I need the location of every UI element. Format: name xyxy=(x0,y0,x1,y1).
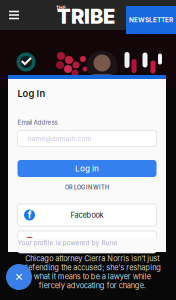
staticText: ✓ xyxy=(19,52,32,70)
staticText: Chicago attorney Cierra Norris isn't jus… xyxy=(23,254,161,290)
staticText: Email Address xyxy=(17,119,57,126)
button[interactable]: NEWSLETTER xyxy=(63,136,113,164)
staticText: f xyxy=(27,208,31,221)
button[interactable]: Menu xyxy=(82,144,94,156)
button[interactable]: f xyxy=(18,139,157,161)
staticText: Log In xyxy=(17,88,45,99)
staticText: TRIBE xyxy=(57,4,115,29)
staticText: Your profile is powered by Rune xyxy=(17,239,117,247)
button[interactable]: Sign in with Google xyxy=(18,139,157,161)
staticText: NEWSLETTER xyxy=(129,16,173,24)
staticText: Google xyxy=(74,237,99,246)
staticText: name@domain.com xyxy=(27,134,91,142)
staticText: OR LOG IN WITH xyxy=(65,184,109,191)
staticText: THE xyxy=(56,5,66,11)
button[interactable]: Log in xyxy=(18,141,157,158)
staticText: Log in xyxy=(75,164,99,173)
button[interactable]: Close xyxy=(75,137,101,163)
staticText: Facebook xyxy=(70,210,103,219)
staticText: ✕ xyxy=(14,271,23,283)
